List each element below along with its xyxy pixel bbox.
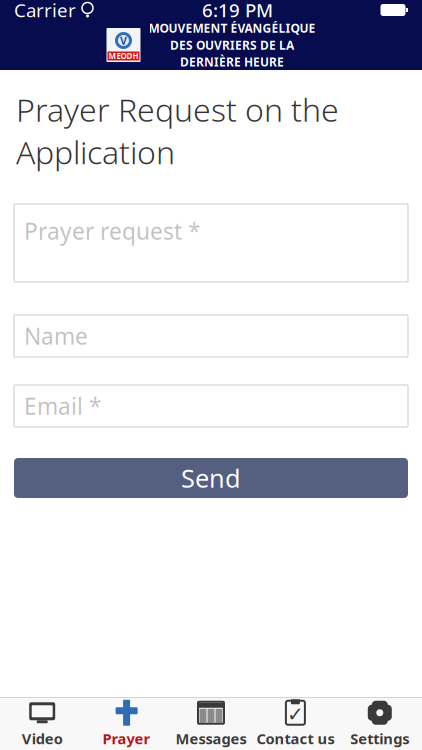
staticText: Prayer Request on the Application bbox=[16, 88, 339, 173]
staticText: Prayer bbox=[103, 729, 151, 748]
button[interactable]: Settings bbox=[338, 698, 422, 750]
button[interactable]: Video bbox=[0, 698, 84, 750]
staticText: MOUVEMENT ÉVANGÉLIQUE bbox=[148, 20, 315, 36]
button[interactable]: Messages bbox=[169, 698, 253, 750]
staticText: Prayer request * bbox=[24, 216, 200, 246]
staticText: Send bbox=[181, 461, 241, 495]
staticText: Email * bbox=[24, 391, 101, 421]
staticText: Carrier bbox=[14, 0, 76, 22]
staticText: ✓ bbox=[287, 703, 304, 726]
staticText: Contact us bbox=[256, 729, 334, 748]
staticText: Name bbox=[24, 321, 88, 351]
staticText: MEODH bbox=[108, 51, 138, 61]
staticText: DERNIÈRE HEURE bbox=[180, 54, 284, 70]
staticText: V bbox=[120, 33, 127, 48]
button[interactable]: Prayer bbox=[84, 698, 169, 750]
staticText: DES OUVRIERS DE LA bbox=[170, 37, 294, 53]
staticText: Video bbox=[22, 729, 63, 748]
staticText: 6:19 PM bbox=[202, 0, 273, 22]
button[interactable]: ✓ bbox=[253, 698, 338, 750]
staticText: Settings bbox=[350, 729, 409, 748]
button[interactable]: Send bbox=[14, 458, 408, 498]
staticText: Messages bbox=[175, 729, 246, 748]
